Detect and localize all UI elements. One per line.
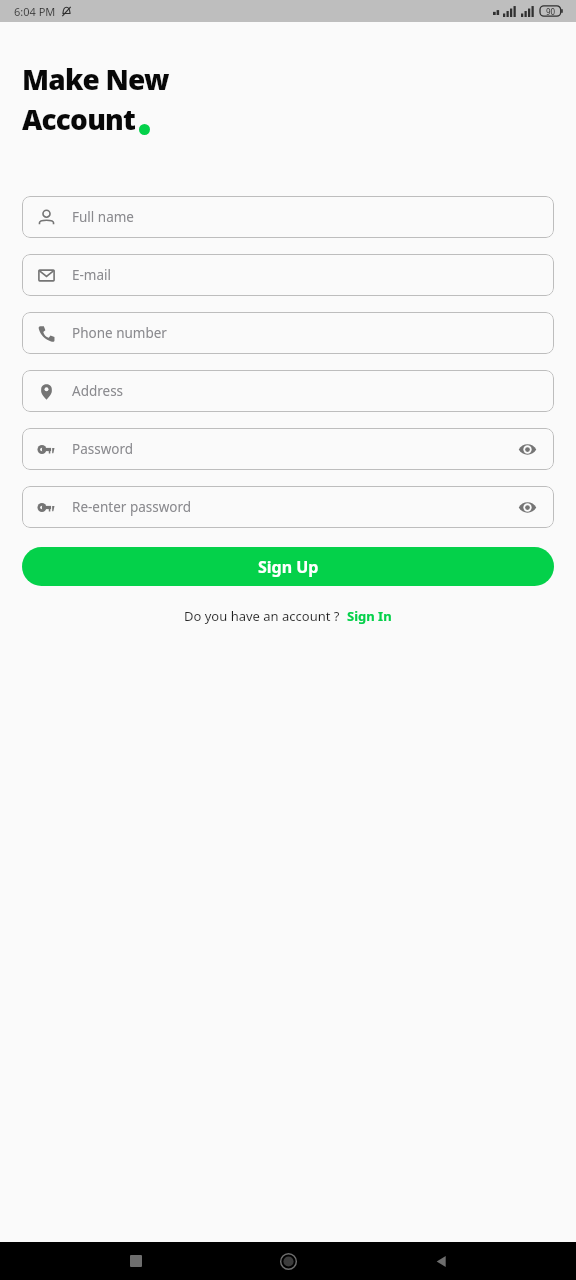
staticText: Account [22, 100, 136, 138]
staticText: Password [72, 440, 516, 458]
staticText: Re-enter password [72, 498, 516, 516]
button[interactable]: Sign In [347, 607, 392, 625]
button[interactable]: Home [271, 1244, 305, 1278]
staticText: Address [72, 382, 538, 400]
button[interactable]: E-mail [22, 254, 554, 296]
button[interactable]: Phone number [22, 312, 554, 354]
staticText: E-mail [72, 266, 538, 284]
button[interactable]: Show password [516, 496, 538, 518]
staticText: Sign In [347, 607, 392, 625]
button[interactable]: Sign Up [22, 547, 554, 586]
button[interactable]: Show password [516, 438, 538, 460]
button[interactable]: Full name [22, 196, 554, 238]
staticText: Phone number [72, 324, 538, 342]
button[interactable]: Back [424, 1244, 458, 1278]
button[interactable]: Password [22, 428, 554, 470]
button[interactable]: Re-enter password [22, 486, 554, 528]
staticText: Do you have an account ? [184, 607, 340, 625]
staticText: Sign Up [258, 556, 319, 578]
button[interactable]: Recent apps [119, 1244, 153, 1278]
staticText: Make New [22, 60, 169, 98]
staticText: Full name [72, 208, 538, 226]
staticText: 90 [546, 6, 556, 17]
staticText: 6:04 PM [14, 4, 56, 19]
button[interactable]: Address [22, 370, 554, 412]
